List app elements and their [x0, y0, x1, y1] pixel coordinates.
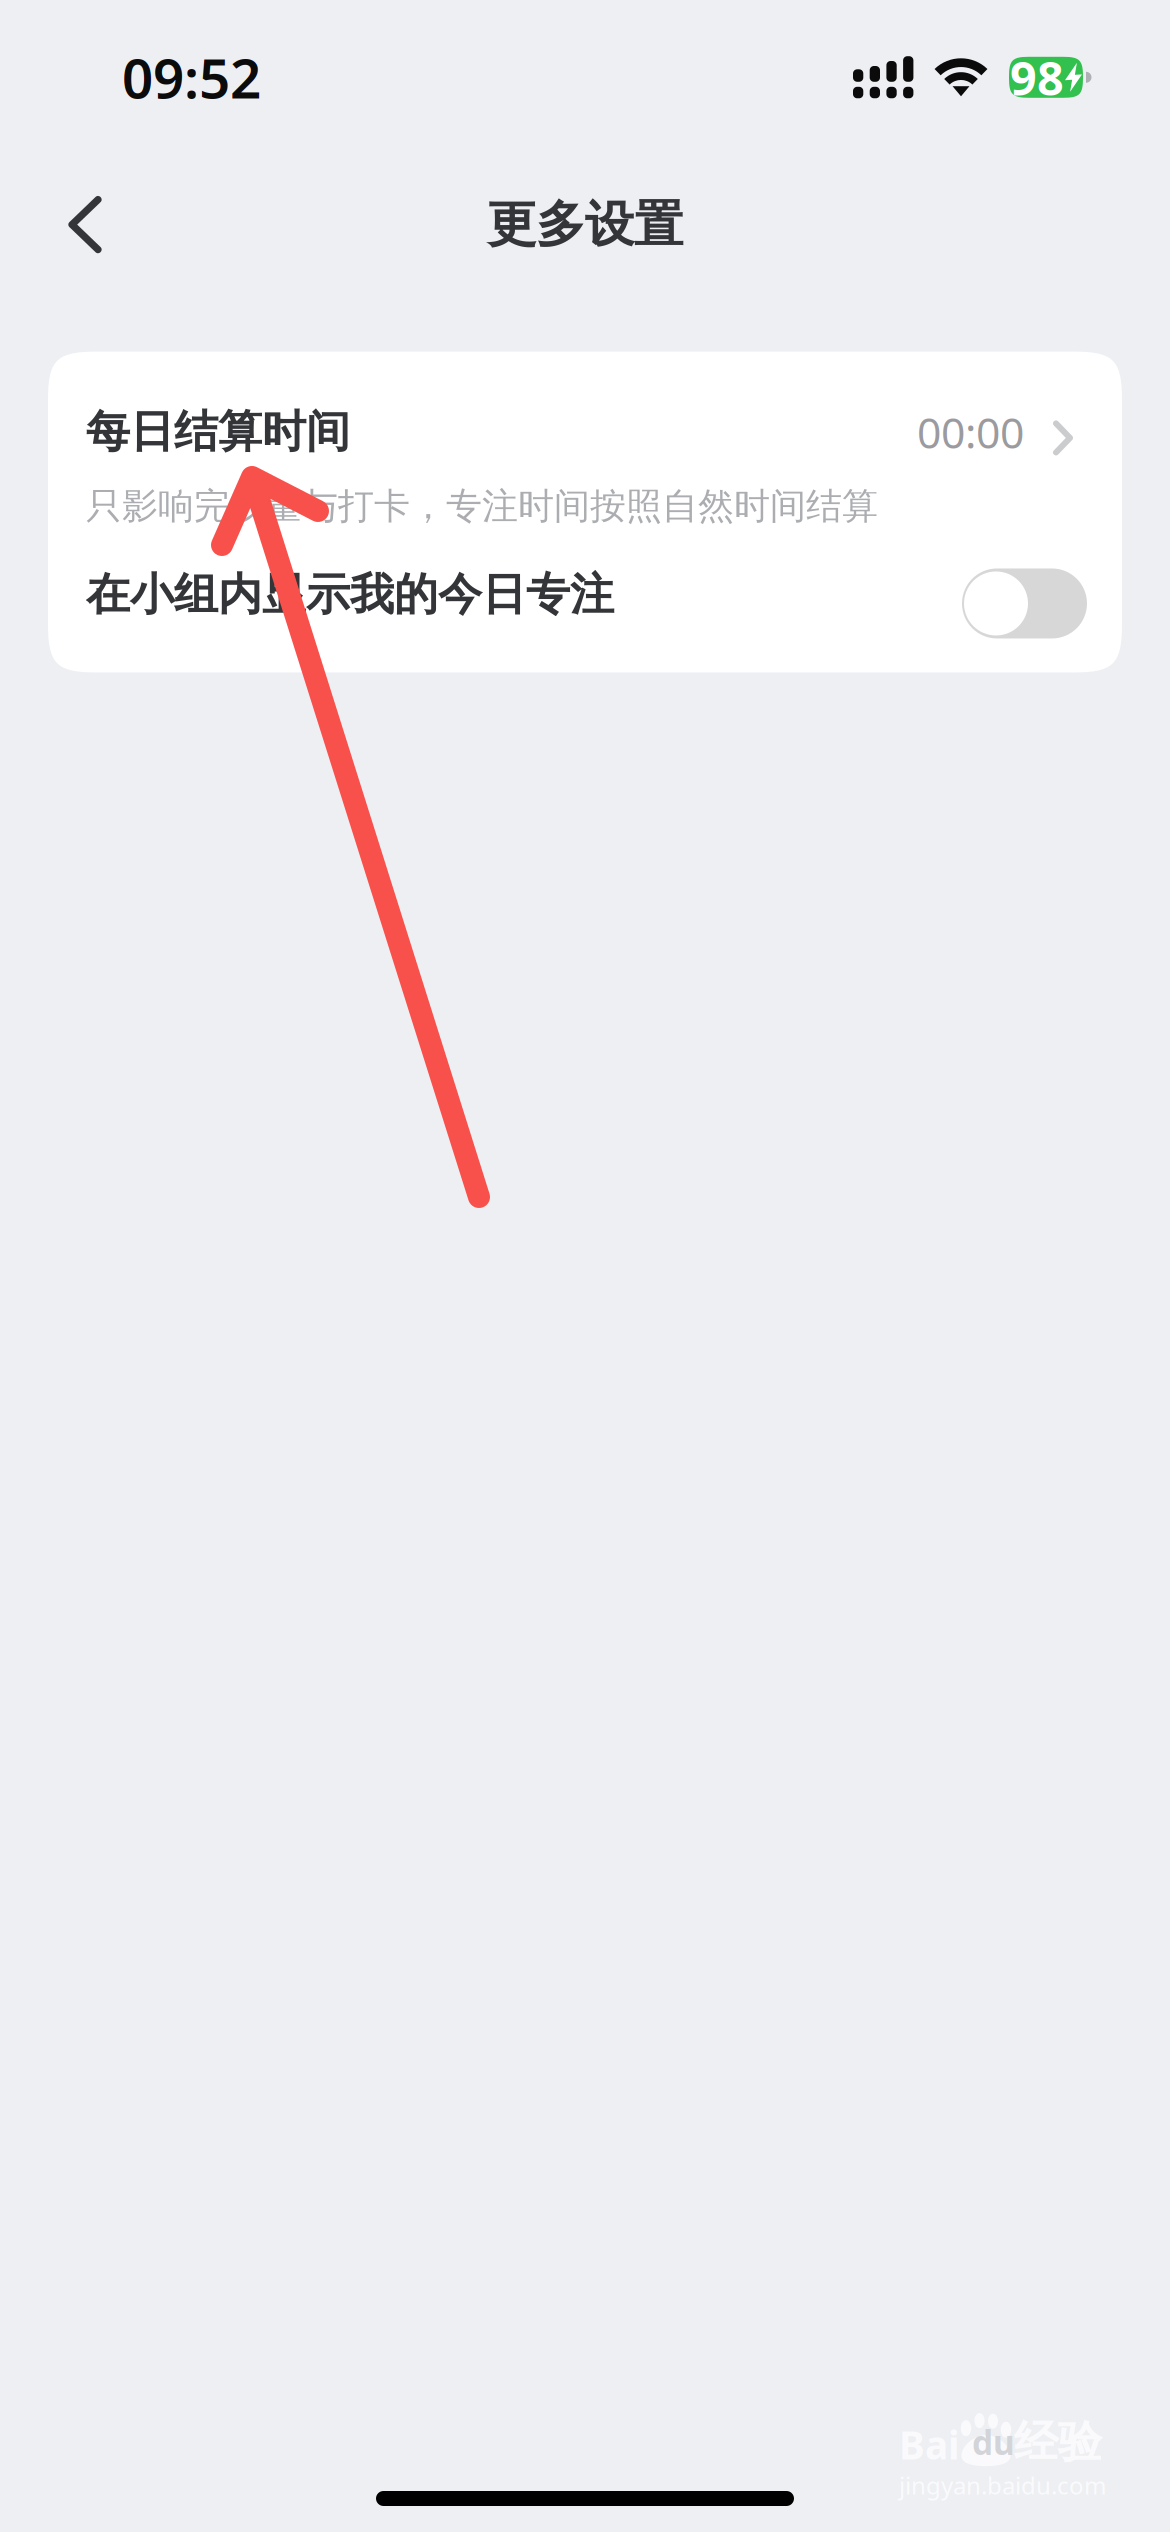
button[interactable]: 每日结算时间 — [48, 352, 1122, 554]
staticText: 每日结算时间 — [86, 405, 350, 459]
button[interactable]: 返回 — [38, 166, 132, 284]
staticText: 98 — [1010, 46, 1064, 108]
staticText: 更多设置 — [487, 194, 683, 255]
staticText: 09:52 — [122, 41, 261, 114]
staticText: Bai — [899, 2419, 960, 2470]
staticText: jingyan.baidu.com — [899, 2469, 1106, 2501]
staticText: 00:00 — [917, 404, 1024, 460]
staticText: du — [972, 2420, 1015, 2464]
staticText: 经验 — [1014, 2415, 1102, 2469]
button[interactable]: 在小组内显示我的今日专注 — [48, 554, 1122, 672]
staticText: 只影响完成量与打卡，专注时间按照自然时间结算 — [86, 484, 878, 528]
staticText: 在小组内显示我的今日专注 — [86, 567, 614, 621]
